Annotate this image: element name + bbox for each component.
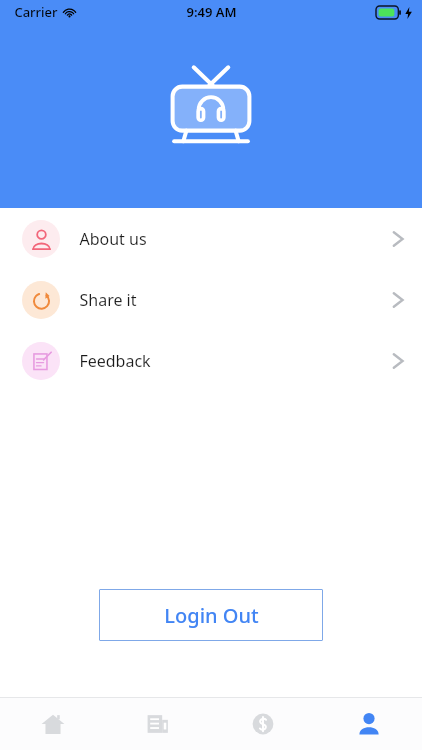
button[interactable]: Profile xyxy=(316,698,422,750)
button[interactable]: Feedback xyxy=(0,330,422,391)
button[interactable]: News xyxy=(105,698,210,750)
button[interactable]: Share it xyxy=(0,269,422,330)
staticText: Feedback xyxy=(79,350,151,372)
staticText: Share it xyxy=(79,289,137,311)
button[interactable]: Earnings xyxy=(210,698,316,750)
staticText: Login Out xyxy=(164,602,259,629)
button[interactable]: Home xyxy=(0,698,105,750)
staticText: Carrier xyxy=(14,3,58,21)
button[interactable]: About us xyxy=(0,208,422,269)
button[interactable]: Login Out xyxy=(99,589,323,641)
staticText: 9:49 AM xyxy=(186,3,237,21)
staticText: About us xyxy=(79,228,147,250)
